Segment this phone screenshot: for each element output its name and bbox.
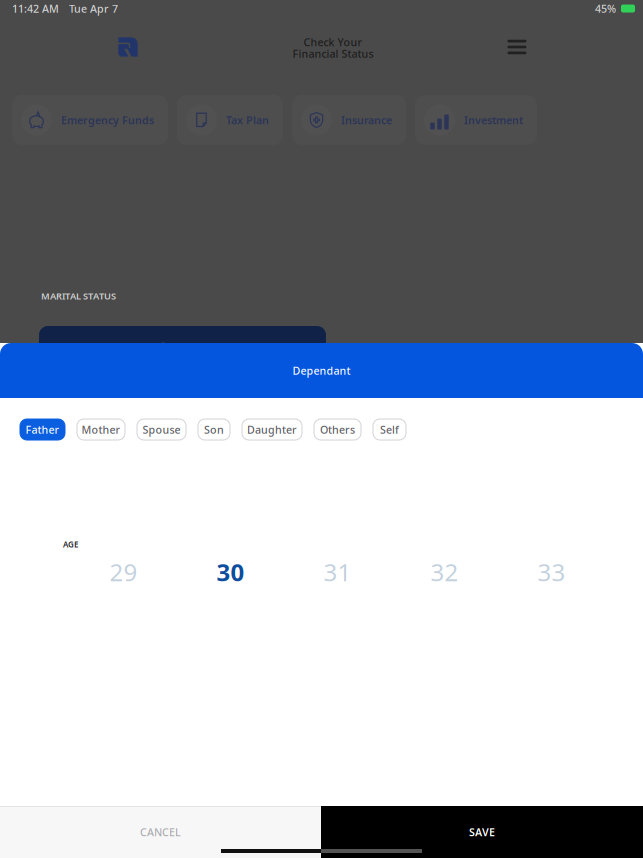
staticText: MARITAL STATUS xyxy=(41,290,116,302)
staticText: 33 xyxy=(537,556,565,588)
staticText: Financial Status xyxy=(292,46,373,61)
button[interactable]: Investment xyxy=(415,95,537,145)
staticText: CANCEL xyxy=(140,825,181,839)
staticText: Mother xyxy=(81,422,120,437)
staticText: 11:42 AM xyxy=(12,1,59,16)
button[interactable]: Daughter xyxy=(242,419,302,440)
staticText: Check Your xyxy=(303,35,362,49)
staticText: Spouse xyxy=(142,422,180,437)
staticText: 45% xyxy=(595,1,616,16)
staticText: Daughter xyxy=(247,422,297,437)
button[interactable]: CANCEL xyxy=(0,806,321,858)
staticText: Dependant xyxy=(292,363,350,378)
button[interactable]: Emergency Funds xyxy=(12,95,168,145)
staticText: 29 xyxy=(109,556,137,588)
staticText: 30 xyxy=(216,556,244,588)
staticText: 32 xyxy=(430,556,458,588)
staticText: Father xyxy=(25,422,59,437)
button[interactable]: Father xyxy=(20,419,65,440)
staticText: Insurance xyxy=(341,113,392,127)
staticText: SAVE xyxy=(469,825,495,839)
button[interactable]: Single xyxy=(39,326,326,372)
staticText: Others xyxy=(320,422,355,437)
staticText: Investment xyxy=(464,113,523,127)
staticText: Tax Plan xyxy=(226,113,269,127)
button[interactable]: Spouse xyxy=(137,419,186,440)
button[interactable]: Others xyxy=(314,419,361,440)
button[interactable]: Mother xyxy=(77,419,125,440)
staticText: Emergency Funds xyxy=(61,113,154,127)
staticText: 31 xyxy=(323,556,351,588)
button[interactable]: Tax Plan xyxy=(177,95,283,145)
staticText: Tue Apr 7 xyxy=(69,1,118,16)
button[interactable]: Menu xyxy=(496,26,538,68)
staticText: Self xyxy=(380,422,399,437)
button[interactable]: SAVE xyxy=(321,806,643,858)
button[interactable]: Self xyxy=(373,419,406,440)
button[interactable]: Insurance xyxy=(292,95,406,145)
staticText: AGE xyxy=(63,539,78,550)
staticText: Single xyxy=(176,342,208,356)
staticText: Son xyxy=(204,422,224,437)
button[interactable]: Married xyxy=(356,326,643,372)
staticText: Married xyxy=(494,342,536,356)
button[interactable]: Son xyxy=(198,419,230,440)
